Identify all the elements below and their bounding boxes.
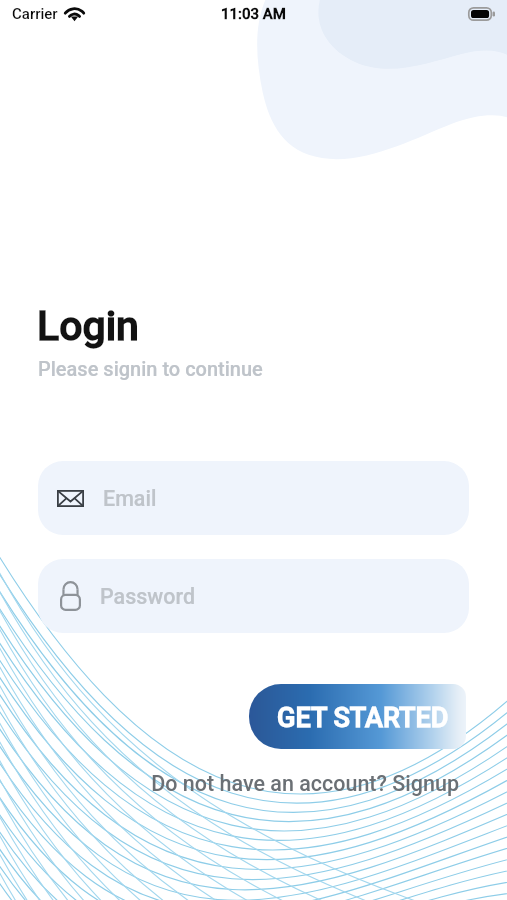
staticText: Email (103, 486, 157, 511)
staticText: Please signin to continue (38, 357, 263, 380)
staticText: 11:03 AM (221, 5, 286, 23)
other: Password (60, 581, 81, 611)
staticText: Password (100, 584, 195, 609)
button[interactable]: Do not have an account? Signup (0, 771, 507, 796)
staticText: Login (37, 302, 139, 350)
button[interactable]: GET STARTED (249, 684, 466, 749)
other: Email (57, 490, 84, 507)
staticText: Carrier (12, 5, 58, 23)
staticText: GET STARTED (277, 702, 449, 734)
button[interactable]: Password (38, 559, 469, 633)
button[interactable]: Email (38, 461, 469, 535)
